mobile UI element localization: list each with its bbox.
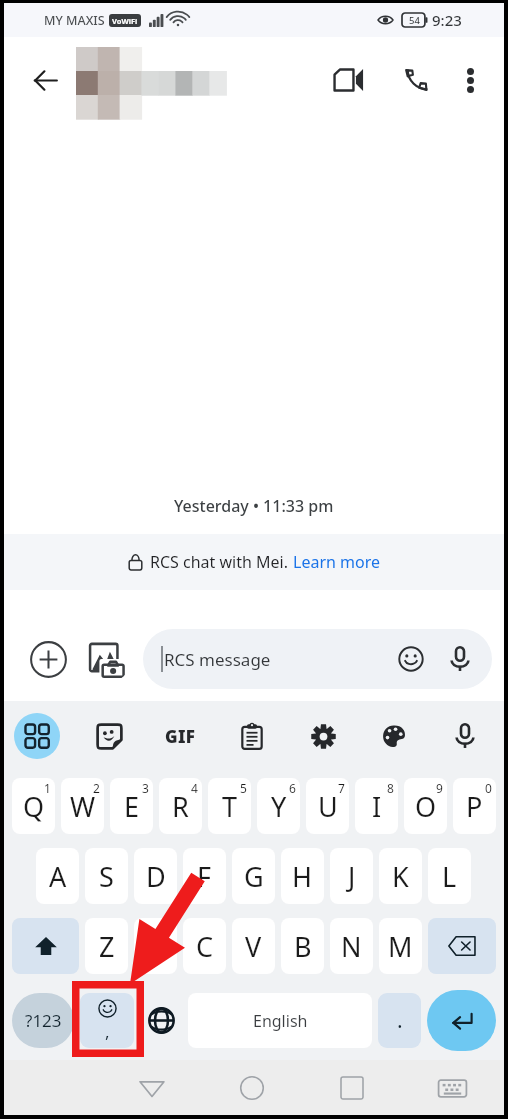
- button[interactable]: Stickers: [87, 714, 131, 758]
- staticText: 9: [436, 780, 443, 796]
- staticText: Y: [271, 788, 287, 825]
- button[interactable]: J: [330, 848, 373, 904]
- button[interactable]: Hide keyboard: [428, 1064, 476, 1112]
- button[interactable]: Call: [393, 57, 439, 103]
- staticText: English: [253, 1010, 308, 1032]
- staticText: Learn more: [293, 551, 380, 573]
- staticText: Q: [23, 788, 45, 825]
- staticText: B: [294, 928, 312, 965]
- staticText: O: [415, 788, 437, 825]
- staticText: N: [341, 928, 362, 965]
- staticText: RCS message: [164, 648, 271, 671]
- button[interactable]: Home: [228, 1064, 276, 1112]
- button[interactable]: Voice message: [444, 643, 476, 675]
- staticText: H: [292, 858, 313, 895]
- button[interactable]: A: [36, 848, 79, 904]
- button[interactable]: Change language: [140, 993, 182, 1048]
- button[interactable]: Settings: [301, 714, 345, 758]
- button[interactable]: O: [404, 778, 447, 834]
- button[interactable]: Y: [257, 778, 300, 834]
- button[interactable]: N: [330, 918, 373, 974]
- button[interactable]: Add attachment: [24, 635, 72, 683]
- button[interactable]: R: [159, 778, 202, 834]
- staticText: ?123: [25, 1009, 62, 1032]
- button[interactable]: K: [379, 848, 422, 904]
- button[interactable]: V: [232, 918, 275, 974]
- staticText: L: [442, 858, 457, 895]
- staticText: 5: [240, 780, 247, 796]
- button[interactable]: G: [232, 848, 275, 904]
- button[interactable]: U: [306, 778, 349, 834]
- button[interactable]: T: [208, 778, 251, 834]
- button[interactable]: Recents: [328, 1064, 376, 1112]
- button[interactable]: Gallery and camera: [83, 635, 131, 683]
- button[interactable]: Back: [128, 1064, 176, 1112]
- staticText: 9:23: [432, 10, 462, 30]
- staticText: Yesterday • 11:33 pm: [174, 495, 334, 517]
- staticText: A: [49, 858, 67, 895]
- staticText: E: [124, 788, 140, 825]
- button[interactable]: F: [183, 848, 226, 904]
- staticText: 0: [485, 780, 492, 796]
- button[interactable]: Z: [85, 918, 128, 974]
- staticText: .: [397, 1006, 403, 1035]
- staticText: G: [244, 858, 264, 895]
- button[interactable]: Emoji: [80, 993, 134, 1048]
- button[interactable]: S: [85, 848, 128, 904]
- staticText: X: [148, 928, 164, 965]
- staticText: R: [172, 788, 189, 825]
- button[interactable]: Q: [12, 778, 55, 834]
- button[interactable]: ?123: [12, 993, 74, 1048]
- staticText: 3: [142, 780, 149, 796]
- staticText: MY MAXIS: [44, 12, 105, 29]
- button[interactable]: Back: [22, 57, 68, 103]
- staticText: M: [388, 928, 413, 965]
- button[interactable]: X: [134, 918, 177, 974]
- button[interactable]: Learn more: [293, 551, 380, 573]
- staticText: W: [70, 788, 96, 825]
- staticText: 1: [44, 780, 51, 796]
- button[interactable]: RCS message: [143, 629, 492, 689]
- button[interactable]: Apps: [14, 713, 60, 759]
- button[interactable]: L: [428, 848, 471, 904]
- button[interactable]: English: [188, 993, 372, 1048]
- staticText: S: [99, 858, 114, 895]
- staticText: 4: [191, 780, 198, 796]
- button[interactable]: Enter: [427, 990, 496, 1051]
- staticText: Z: [99, 928, 115, 965]
- staticText: C: [196, 928, 214, 965]
- staticText: RCS chat with Mei.: [150, 551, 293, 573]
- button[interactable]: .: [378, 993, 421, 1048]
- button[interactable]: E: [110, 778, 153, 834]
- staticText: VoWiFi: [112, 16, 138, 26]
- staticText: D: [146, 858, 166, 895]
- button[interactable]: Clipboard: [230, 714, 274, 758]
- button[interactable]: Emoji: [394, 642, 428, 676]
- button[interactable]: More options: [450, 60, 490, 100]
- button[interactable]: W: [61, 778, 104, 834]
- staticText: P: [466, 788, 483, 825]
- button[interactable]: H: [281, 848, 324, 904]
- button[interactable]: M: [379, 918, 422, 974]
- button[interactable]: Video call: [324, 56, 372, 104]
- staticText: U: [318, 788, 338, 825]
- staticText: J: [348, 858, 356, 895]
- staticText: V: [245, 928, 262, 965]
- button[interactable]: Backspace: [428, 918, 496, 974]
- button[interactable]: Shift: [12, 918, 79, 974]
- button[interactable]: D: [134, 848, 177, 904]
- button[interactable]: C: [183, 918, 226, 974]
- button[interactable]: I: [355, 778, 398, 834]
- staticText: 7: [338, 780, 345, 796]
- button[interactable]: Voice input: [443, 714, 487, 758]
- button[interactable]: GIF: [158, 714, 202, 758]
- staticText: I: [372, 788, 382, 825]
- button[interactable]: Themes: [372, 714, 416, 758]
- staticText: K: [392, 858, 409, 895]
- button[interactable]: P: [453, 778, 496, 834]
- staticText: 2: [93, 780, 100, 796]
- button[interactable]: B: [281, 918, 324, 974]
- staticText: GIF: [165, 725, 196, 748]
- staticText: F: [197, 858, 212, 895]
- staticText: T: [222, 788, 238, 825]
